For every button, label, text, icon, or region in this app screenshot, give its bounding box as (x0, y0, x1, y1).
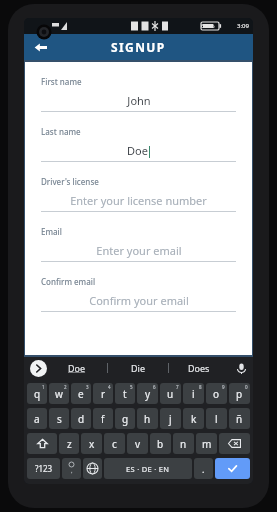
button[interactable]: d (71, 408, 91, 429)
staticText: Confirm email (41, 276, 96, 287)
staticText: u (167, 387, 174, 401)
staticText: c (112, 437, 117, 451)
button[interactable]: Last name (41, 126, 236, 176)
button[interactable]: Emoji and comma (62, 458, 81, 479)
staticText: SIGNUP (111, 39, 166, 55)
button[interactable]: Change language (83, 458, 102, 479)
button[interactable]: c (104, 433, 125, 454)
staticText: e (78, 387, 84, 401)
button[interactable]: Confirm email (41, 276, 236, 326)
staticText: i (192, 387, 195, 401)
staticText: r (101, 387, 106, 401)
button[interactable]: f (93, 408, 113, 429)
staticText: ñ (236, 412, 243, 426)
staticText: Enter your license number (70, 193, 207, 208)
staticText: Email (41, 226, 62, 237)
button[interactable]: u (160, 383, 181, 404)
staticText: h (144, 412, 151, 426)
staticText: m (202, 437, 212, 451)
button[interactable]: s (49, 408, 69, 429)
staticText: Confirm your email (89, 293, 189, 308)
staticText: Does (188, 362, 210, 374)
staticText: 6 (153, 384, 156, 390)
button[interactable]: i (183, 383, 204, 404)
staticText: f (101, 412, 105, 426)
button[interactable]: Shift (27, 433, 57, 454)
staticText: Die (131, 362, 145, 374)
staticText: g (122, 412, 129, 426)
staticText: John (127, 93, 151, 108)
button[interactable]: h (137, 408, 158, 429)
staticText: 7 (176, 384, 179, 390)
staticText: 2 (64, 384, 67, 390)
staticText: First name (41, 76, 82, 87)
button[interactable]: y (137, 383, 158, 404)
staticText: x (89, 437, 95, 451)
button[interactable]: z (59, 433, 79, 454)
staticText: Enter your email (96, 243, 182, 258)
button[interactable]: n (173, 433, 194, 454)
staticText: 4 (108, 384, 111, 390)
button[interactable]: Enter (215, 458, 250, 479)
button[interactable]: Back (30, 37, 50, 57)
staticText: l (215, 412, 218, 426)
staticText: 3 (86, 384, 89, 390)
staticText: z (67, 437, 72, 451)
button[interactable]: Expand suggestions (30, 360, 47, 377)
button[interactable]: ñ (229, 408, 250, 429)
button[interactable]: Driver's license (41, 176, 236, 226)
button[interactable]: b (150, 433, 171, 454)
button[interactable]: Voice input (229, 357, 253, 379)
staticText: t (123, 387, 127, 401)
staticText: Last name (41, 126, 81, 137)
button[interactable]: Backspace (219, 433, 250, 454)
button[interactable]: j (160, 408, 181, 429)
staticText: y (145, 387, 151, 401)
button[interactable]: Doe (47, 357, 107, 379)
button[interactable]: a (27, 408, 47, 429)
button[interactable]: p (229, 383, 250, 404)
button[interactable]: Does (169, 357, 229, 379)
staticText: Driver's license (41, 176, 99, 187)
staticText: 3:09 (237, 22, 249, 30)
staticText: v (135, 437, 141, 451)
button[interactable]: l (206, 408, 227, 429)
staticText: Doe (127, 143, 148, 158)
staticText: . (202, 463, 205, 475)
button[interactable]: t (115, 383, 135, 404)
button[interactable]: q (27, 383, 47, 404)
button[interactable]: x (81, 433, 102, 454)
staticText: n (180, 437, 187, 451)
staticText: 9 (222, 384, 225, 390)
button[interactable]: o (206, 383, 227, 404)
staticText: 5 (130, 384, 133, 390)
staticText: Doe (68, 362, 86, 374)
staticText: j (169, 412, 172, 426)
staticText: d (78, 412, 85, 426)
staticText: 1 (42, 384, 45, 390)
button[interactable]: g (115, 408, 135, 429)
button[interactable]: w (49, 383, 69, 404)
button[interactable]: r (93, 383, 113, 404)
button[interactable]: ES · DE · EN (104, 458, 192, 479)
staticText: a (34, 412, 40, 426)
staticText: 67 % (201, 22, 215, 30)
button[interactable]: Die (108, 357, 168, 379)
button[interactable]: ?123 (27, 458, 60, 479)
staticText: o (213, 387, 220, 401)
button[interactable]: Email (41, 226, 236, 276)
button[interactable]: m (196, 433, 217, 454)
staticText: ES · DE · EN (126, 464, 170, 474)
staticText: , (71, 467, 73, 475)
button[interactable]: k (183, 408, 204, 429)
button[interactable]: First name (41, 76, 236, 126)
button[interactable]: . (194, 458, 213, 479)
button[interactable]: v (127, 433, 148, 454)
staticText: ?123 (35, 463, 53, 474)
staticText: w (55, 387, 63, 401)
staticText: q (34, 387, 41, 401)
button[interactable]: e (71, 383, 91, 404)
staticText: s (57, 412, 62, 426)
staticText: b (157, 437, 164, 451)
staticText: k (191, 412, 197, 426)
